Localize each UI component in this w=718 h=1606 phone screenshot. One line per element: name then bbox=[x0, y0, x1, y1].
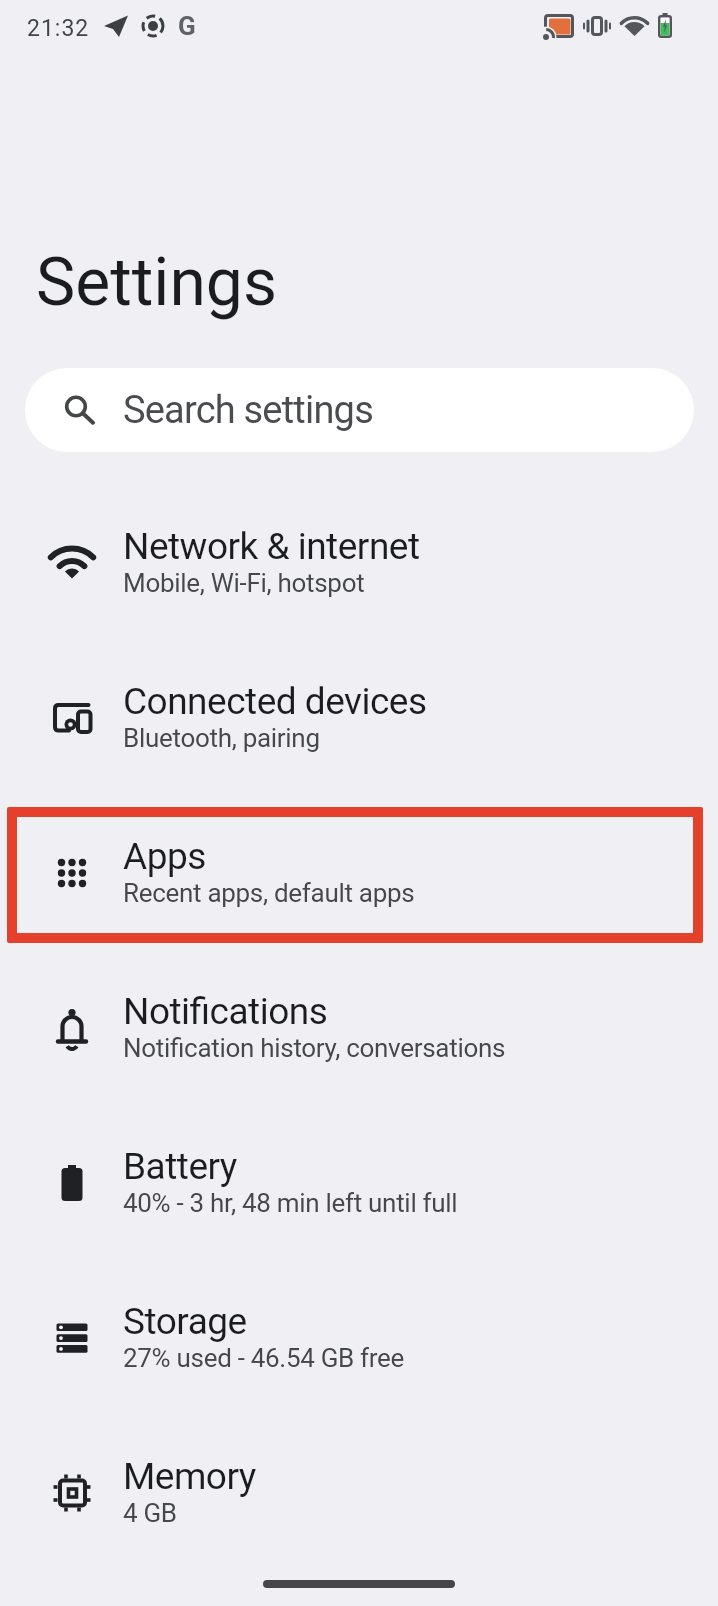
staticText: Battery bbox=[123, 1145, 237, 1188]
staticText: Connected devices bbox=[123, 680, 427, 723]
staticText: Search settings bbox=[123, 388, 373, 433]
button[interactable]: Network & internet bbox=[0, 485, 718, 640]
staticText: Mobile, Wi-Fi, hotspot bbox=[123, 568, 365, 598]
button[interactable]: Storage bbox=[0, 1260, 718, 1415]
button[interactable]: Connected devices bbox=[0, 640, 718, 795]
staticText: 40% - 3 hr, 48 min left until full bbox=[123, 1188, 458, 1218]
staticText: Settings bbox=[36, 244, 277, 321]
staticText: 21:32 bbox=[27, 15, 90, 42]
staticText: 27% used - 46.54 GB free bbox=[123, 1343, 405, 1373]
staticText: Recent apps, default apps bbox=[123, 878, 415, 908]
staticText: Memory bbox=[123, 1455, 256, 1498]
staticText: 4 GB bbox=[123, 1498, 177, 1528]
staticText: Storage bbox=[123, 1300, 247, 1343]
button[interactable]: Battery bbox=[0, 1105, 718, 1260]
staticText: Apps bbox=[123, 835, 206, 878]
staticText: Notifications bbox=[123, 990, 328, 1033]
button[interactable]: Apps bbox=[0, 795, 718, 950]
button[interactable]: Notifications bbox=[0, 950, 718, 1105]
button[interactable]: Search settings bbox=[25, 368, 694, 452]
button[interactable]: Memory bbox=[0, 1415, 718, 1570]
staticText: Network & internet bbox=[123, 525, 420, 568]
staticText: Bluetooth, pairing bbox=[123, 723, 320, 753]
staticText: Notification history, conversations bbox=[123, 1033, 506, 1063]
staticText: G bbox=[178, 11, 196, 41]
